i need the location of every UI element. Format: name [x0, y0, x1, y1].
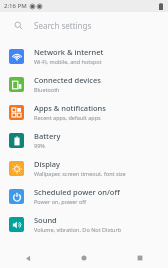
- button[interactable]: Apps & notifications: [0, 98, 168, 126]
- button[interactable]: Network & internet: [0, 42, 168, 70]
- button[interactable]: Search: [0, 12, 168, 38]
- button[interactable]: Back: [0, 248, 56, 268]
- staticText: 99%: [34, 142, 45, 149]
- staticText: Wallpaper, screen timeout, font size: [34, 170, 126, 177]
- staticText: Power on, power off: [34, 198, 87, 205]
- other: Search: [14, 21, 23, 30]
- button[interactable]: Connected devices: [0, 70, 168, 98]
- staticText: 2:16 PM: [4, 2, 27, 10]
- staticText: Volume, vibration, Do Not Disturb: [34, 226, 122, 233]
- staticText: Apps & notifications: [34, 103, 106, 113]
- staticText: Recent apps, default apps: [34, 114, 101, 121]
- staticText: Scheduled power on/off: [34, 187, 120, 197]
- staticText: Connected devices: [34, 75, 101, 85]
- button[interactable]: Sound: [0, 210, 168, 238]
- button[interactable]: Display: [0, 154, 168, 182]
- staticText: Bluetooth: [34, 86, 60, 93]
- staticText: Wi-Fi, mobile, and hotspot: [34, 58, 102, 65]
- button[interactable]: Scheduled power on/off: [0, 182, 168, 210]
- staticText: Search settings: [34, 20, 92, 31]
- button[interactable]: Battery: [0, 126, 168, 154]
- staticText: Battery: [34, 131, 61, 141]
- staticText: Display: [34, 159, 61, 169]
- button[interactable]: Home: [56, 248, 112, 268]
- button[interactable]: Recent apps: [112, 248, 168, 268]
- staticText: Network & internet: [34, 47, 104, 57]
- staticText: Sound: [34, 215, 57, 225]
